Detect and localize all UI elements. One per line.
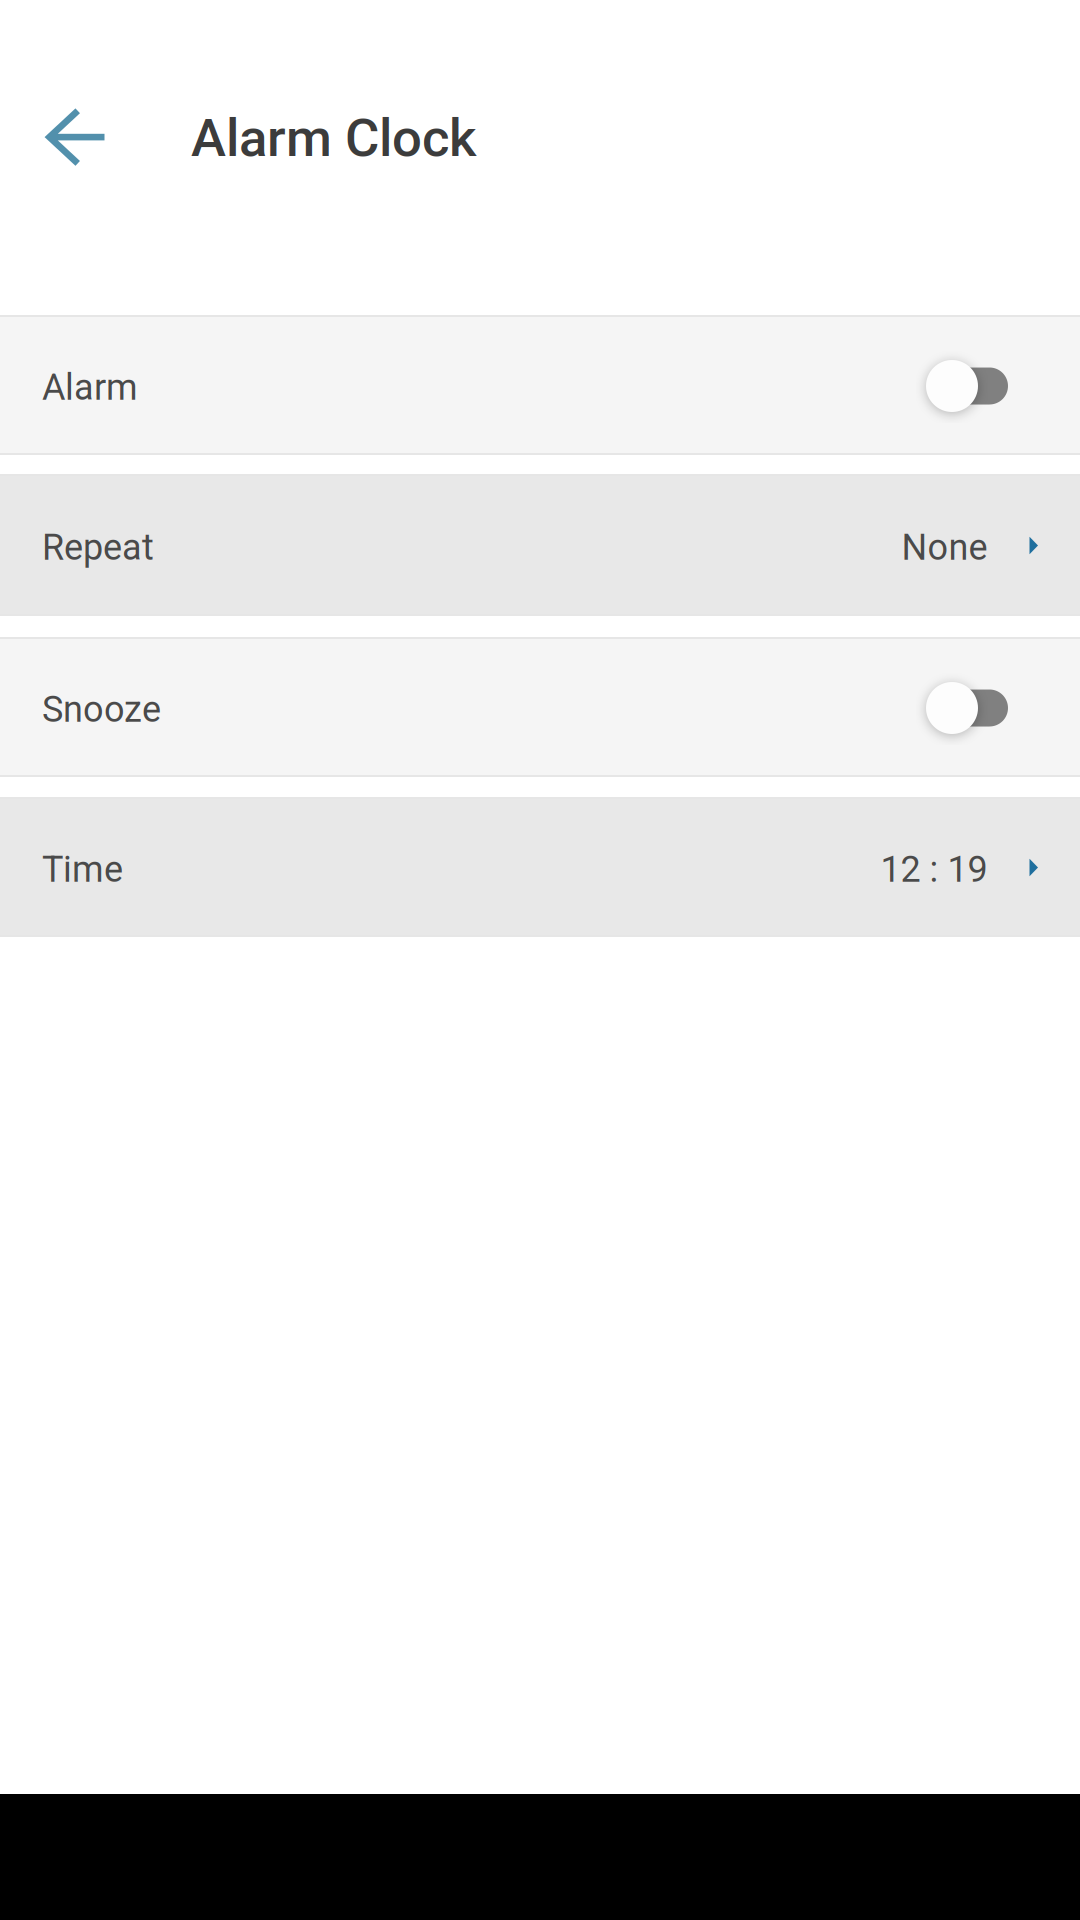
- button[interactable]: Time: [0, 797, 1080, 937]
- button[interactable]: Repeat: [0, 474, 1080, 616]
- staticText: Alarm Clock: [191, 107, 476, 169]
- button[interactable]: Back: [0, 51, 152, 223]
- staticText: Snooze: [42, 688, 161, 731]
- button[interactable]: Alarm: [0, 315, 1080, 455]
- staticText: Time: [42, 848, 123, 891]
- staticText: Alarm: [42, 366, 138, 409]
- staticText: Repeat: [42, 526, 154, 569]
- button[interactable]: Snooze: [0, 637, 1080, 777]
- staticText: None: [901, 526, 987, 569]
- staticText: 12 : 19: [880, 848, 987, 891]
